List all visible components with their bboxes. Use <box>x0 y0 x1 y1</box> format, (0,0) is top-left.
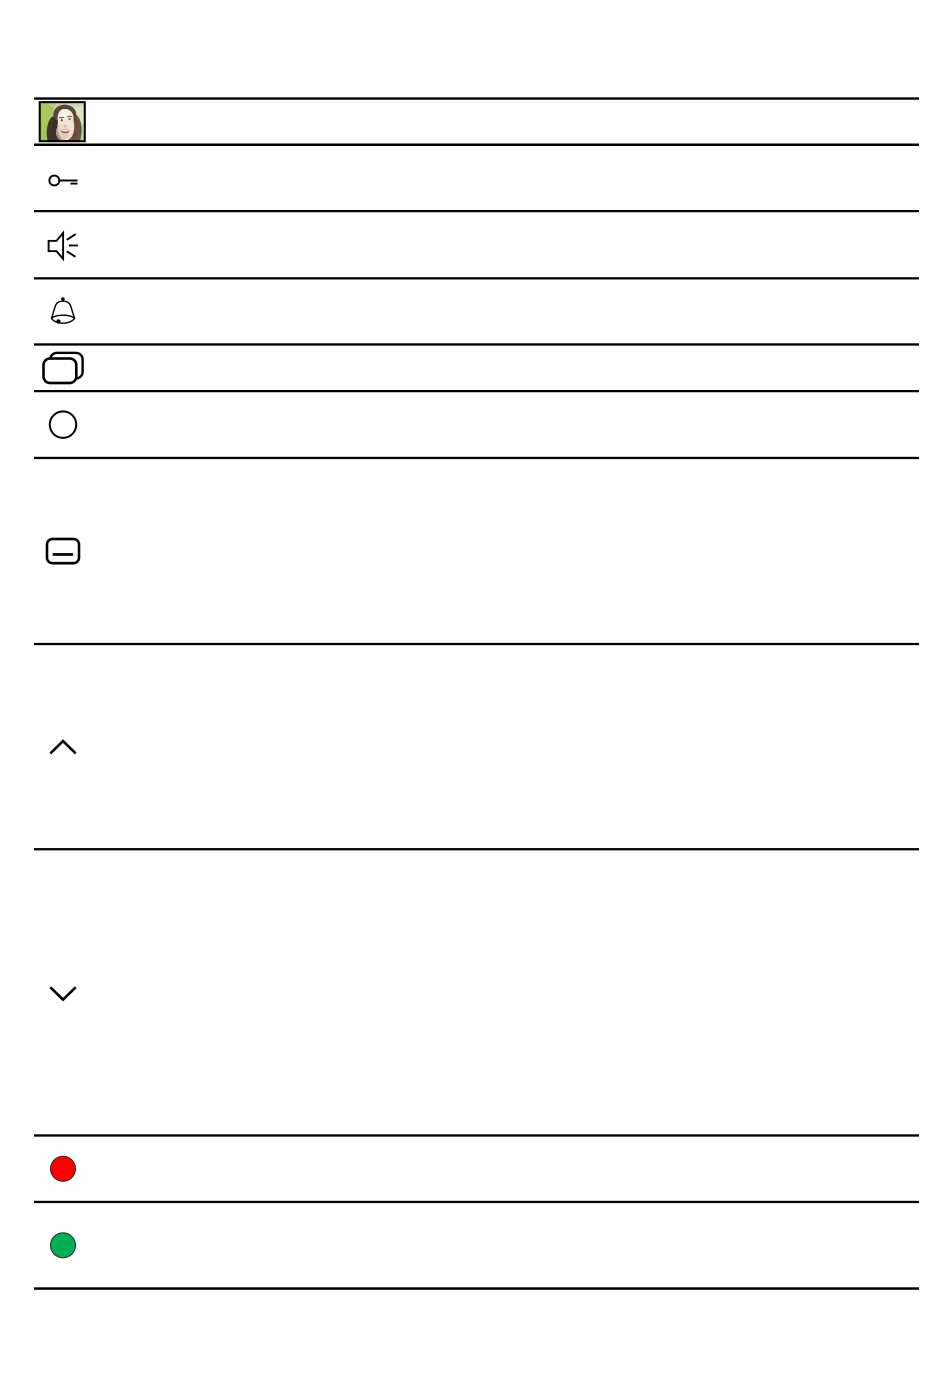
button[interactable]: Passwords <box>0 146 950 210</box>
button[interactable]: Expand <box>0 851 950 1134</box>
button[interactable]: Accessibility <box>0 459 950 643</box>
button[interactable]: Display <box>0 392 950 457</box>
button[interactable]: Start <box>0 1203 950 1287</box>
button[interactable]: Windows <box>0 346 950 390</box>
button[interactable]: Stop <box>0 1137 950 1201</box>
button[interactable]: Collapse <box>0 645 950 848</box>
button[interactable]: Profile <box>0 100 950 143</box>
button[interactable]: Notifications <box>0 280 950 343</box>
button[interactable]: Sounds <box>0 212 950 277</box>
